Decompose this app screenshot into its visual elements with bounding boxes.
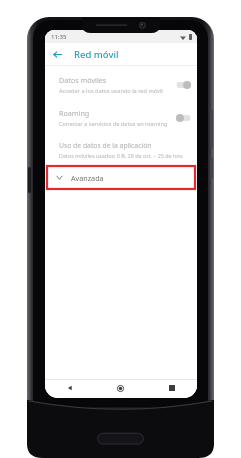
button[interactable]: Recent apps (146, 380, 197, 396)
staticText: 11:35 (51, 33, 67, 41)
staticText: Acceder a los datos usando la red móvil (59, 87, 163, 95)
button[interactable]: Roaming (175, 113, 192, 123)
button[interactable]: Home (95, 380, 146, 396)
button[interactable]: Avanzada (47, 166, 195, 189)
staticText: Datos móviles usados: 0 B, 28 de oct. – … (59, 152, 184, 159)
button[interactable]: Back (45, 380, 95, 396)
staticText: Datos móviles (59, 75, 107, 85)
button[interactable]: Datos móviles (45, 75, 197, 95)
staticText: Roaming (59, 108, 90, 118)
staticText: Red móvil (74, 48, 119, 61)
button[interactable]: Uso de datos de la aplicación (45, 141, 197, 159)
staticText: Uso de datos de la aplicación (59, 141, 152, 150)
staticText: Conectar a servicios de datos en roaming (59, 120, 168, 128)
button[interactable]: Back (48, 45, 66, 63)
staticText: Avanzada (71, 173, 104, 183)
button[interactable]: Roaming (45, 108, 197, 128)
button[interactable]: Datos móviles (175, 80, 192, 90)
